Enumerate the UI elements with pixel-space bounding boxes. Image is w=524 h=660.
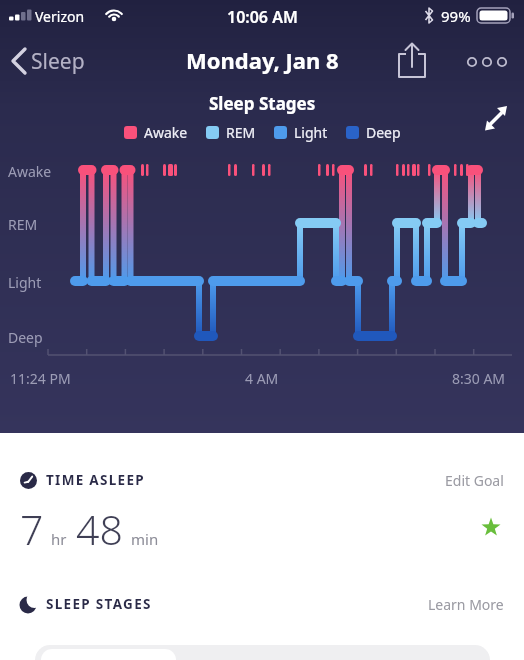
staticText: Awake bbox=[8, 162, 52, 181]
staticText: Light bbox=[8, 273, 42, 292]
button[interactable]: Sleep bbox=[10, 45, 120, 79]
button[interactable] bbox=[462, 48, 512, 76]
staticText: Awake bbox=[144, 123, 188, 142]
staticText: Light bbox=[294, 123, 328, 142]
staticText: Verizon bbox=[35, 7, 85, 26]
button[interactable] bbox=[480, 108, 510, 138]
staticText: REM bbox=[8, 215, 38, 234]
staticText: Deep bbox=[366, 123, 401, 142]
staticText: hr bbox=[51, 529, 67, 549]
staticText: 7 bbox=[20, 501, 44, 557]
button[interactable] bbox=[392, 40, 432, 82]
staticText: Learn More bbox=[428, 595, 504, 614]
staticText: Sleep bbox=[31, 47, 85, 76]
button[interactable]: REM bbox=[206, 123, 256, 142]
staticText: Deep bbox=[8, 328, 43, 347]
button[interactable]: SLEEP STAGES bbox=[20, 590, 504, 618]
button[interactable]: 7 bbox=[20, 501, 159, 557]
staticText: Sleep Stages bbox=[209, 92, 316, 115]
staticText: 8:30 AM bbox=[452, 369, 506, 388]
staticText: SLEEP STAGES bbox=[46, 595, 152, 613]
staticText: Edit Goal bbox=[445, 471, 504, 490]
staticText: 4 AM bbox=[245, 369, 279, 388]
staticText: min bbox=[131, 529, 159, 549]
staticText: Monday, Jan 8 bbox=[186, 45, 339, 75]
staticText: 10:06 AM bbox=[227, 6, 298, 28]
staticText: REM bbox=[226, 123, 256, 142]
staticText: 99% bbox=[441, 6, 471, 26]
staticText: 48 bbox=[76, 501, 123, 557]
button[interactable]: Light bbox=[274, 123, 328, 142]
button[interactable]: TIME ASLEEP bbox=[20, 466, 504, 494]
button[interactable]: Awake bbox=[124, 123, 188, 142]
staticText: TIME ASLEEP bbox=[46, 471, 145, 489]
button[interactable]: Deep bbox=[346, 123, 401, 142]
staticText: 11:24 PM bbox=[10, 369, 71, 388]
